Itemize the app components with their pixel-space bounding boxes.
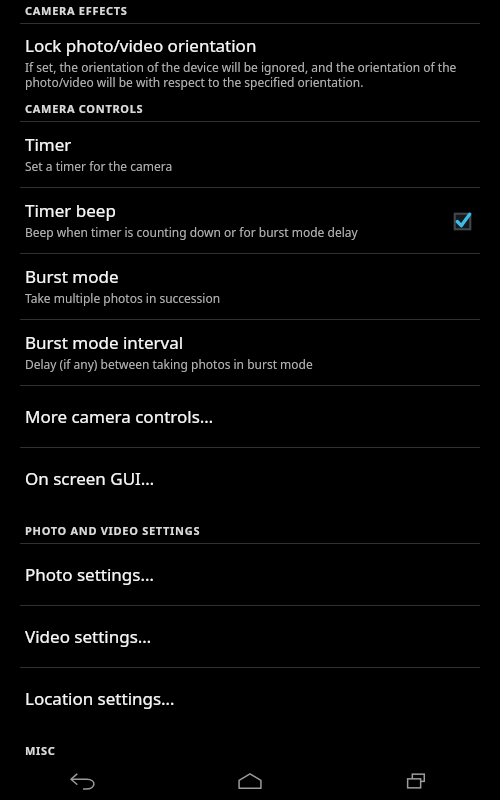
button[interactable]: Location settings… (0, 668, 500, 729)
button[interactable]: Video settings… (0, 606, 500, 667)
staticText: Delay (if any) between taking photos in … (25, 356, 313, 372)
staticText: On screen GUI… (25, 467, 155, 490)
staticText: Burst mode interval (25, 331, 184, 354)
staticText: PHOTO AND VIDEO SETTINGS (25, 523, 201, 538)
button[interactable]: Burst mode interval (0, 320, 500, 385)
staticText: Video settings… (25, 625, 152, 648)
staticText: CAMERA EFFECTS (25, 3, 128, 18)
staticText: CAMERA CONTROLS (25, 101, 144, 116)
staticText: If set, the orientation of the device wi… (25, 59, 482, 90)
staticText: MISC (25, 743, 56, 758)
staticText: Burst mode (25, 265, 119, 288)
staticText: Timer beep (25, 199, 116, 222)
button[interactable]: Recent apps (385, 762, 449, 800)
button[interactable]: Home (218, 762, 282, 800)
button[interactable]: On screen GUI… (0, 448, 500, 509)
staticText: Beep when timer is counting down or for … (25, 224, 358, 240)
button[interactable]: Timer beep checkbox (442, 201, 482, 241)
button[interactable]: Timer beep (0, 188, 500, 253)
button[interactable]: More camera controls… (0, 386, 500, 447)
button[interactable]: Timer (0, 122, 500, 187)
button[interactable]: Back (51, 762, 115, 800)
staticText: Lock photo/video orientation (25, 34, 257, 57)
staticText: More camera controls… (25, 405, 214, 428)
button[interactable]: Photo settings… (0, 544, 500, 605)
button[interactable]: Burst mode (0, 254, 500, 319)
staticText: Photo settings… (25, 563, 154, 586)
button[interactable]: Lock photo/video orientation (0, 24, 500, 97)
staticText: Location settings… (25, 687, 175, 710)
staticText: Set a timer for the camera (25, 158, 173, 174)
staticText: Timer (25, 133, 72, 156)
staticText: Take multiple photos in succession (25, 290, 221, 306)
